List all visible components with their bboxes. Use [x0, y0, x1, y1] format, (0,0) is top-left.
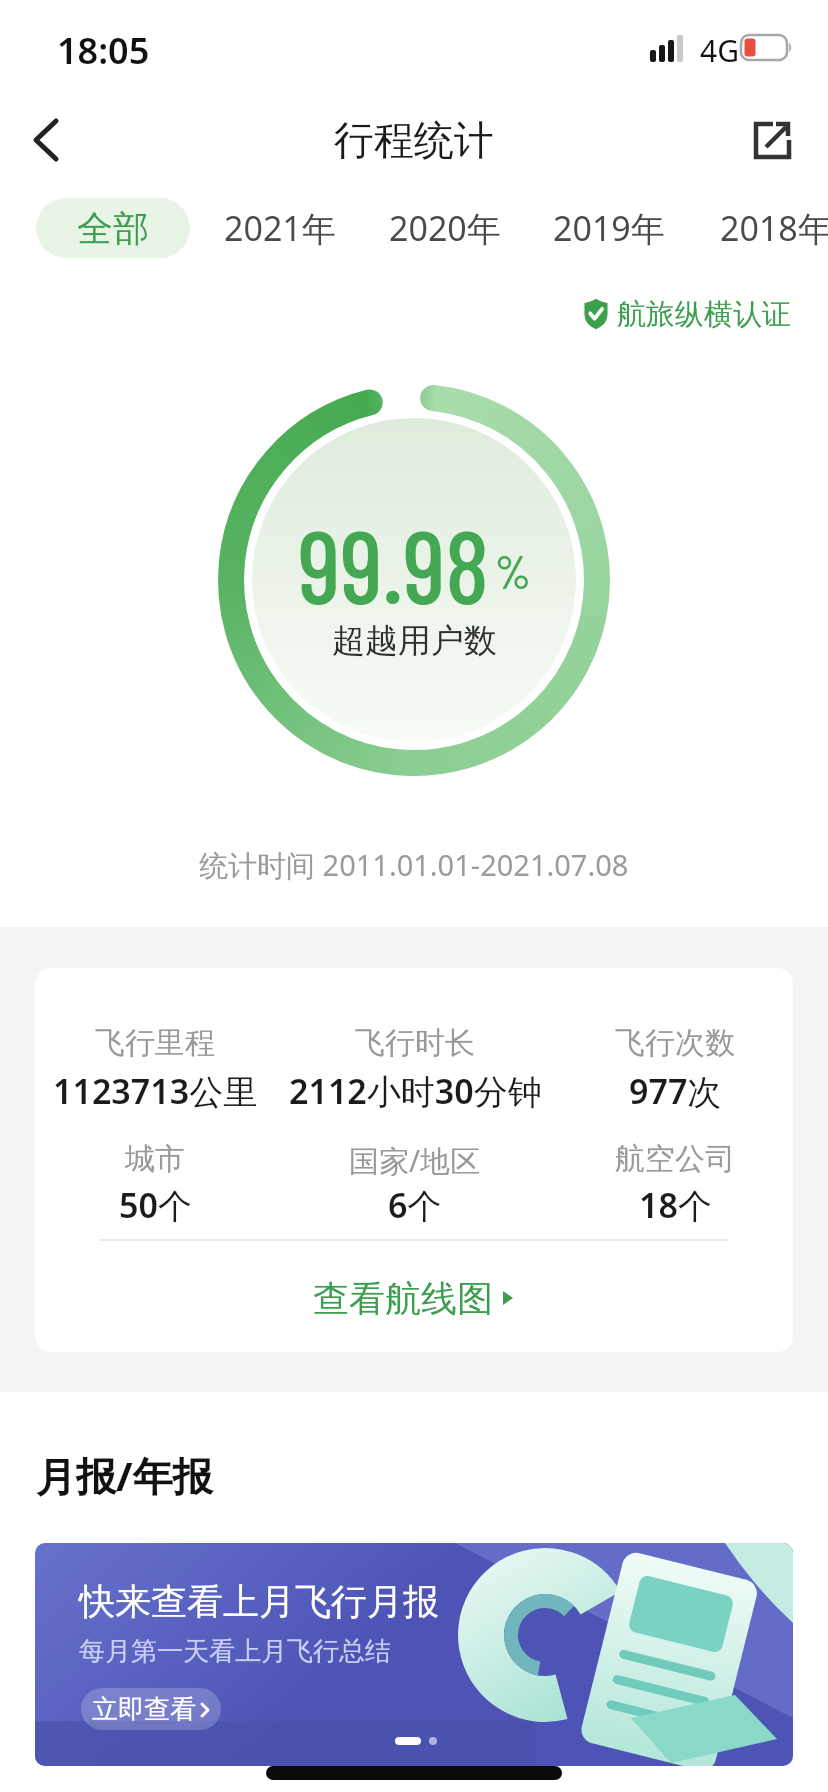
button[interactable]: 快来查看上月飞行月报	[35, 1543, 793, 1766]
staticText: 行程统计	[334, 115, 494, 165]
staticText: 城市	[125, 1140, 185, 1176]
staticText: 全部	[77, 206, 149, 251]
staticText: 6个	[388, 1182, 442, 1226]
button[interactable]: 2018年	[701, 198, 828, 258]
staticText: 99.98	[298, 502, 490, 612]
staticText: 每月第一天看上月飞行总结	[79, 1635, 391, 1668]
staticText: 977次	[629, 1068, 722, 1112]
staticText: 统计时间 2011.01.01-2021.07.08	[199, 845, 629, 885]
button[interactable]: 航旅纵横认证	[583, 294, 791, 334]
button[interactable]: 2020年	[370, 198, 520, 258]
staticText: 超越用户数	[332, 620, 497, 662]
staticText: 4G	[700, 30, 739, 71]
staticText: %	[495, 543, 531, 598]
button[interactable]	[738, 106, 806, 174]
staticText: 18个	[639, 1182, 712, 1226]
button[interactable]	[14, 108, 78, 172]
staticText: 航空公司	[615, 1140, 735, 1176]
button[interactable]: 全部	[36, 198, 190, 258]
staticText: 2112小时30分钟	[289, 1068, 542, 1112]
staticText: 国家/地区	[349, 1140, 481, 1176]
staticText: 月报/年报	[36, 1448, 213, 1503]
button[interactable]: 2021年	[205, 198, 355, 258]
staticText: 2018年	[720, 205, 828, 251]
button[interactable]: 立即查看	[81, 1688, 221, 1730]
staticText: 1123713公里	[53, 1068, 258, 1112]
staticText: 飞行里程	[95, 1024, 215, 1060]
staticText: 快来查看上月飞行月报	[79, 1579, 439, 1624]
staticText: 50个	[119, 1182, 192, 1226]
staticText: 飞行时长	[355, 1024, 475, 1060]
staticText: 2019年	[553, 205, 665, 251]
staticText: 18:05	[57, 26, 150, 75]
staticText: 2021年	[224, 205, 336, 251]
staticText: 航旅纵横认证	[617, 296, 791, 333]
staticText: 立即查看	[92, 1693, 196, 1726]
button[interactable]: 查看航线图	[35, 1268, 793, 1328]
staticText: 飞行次数	[615, 1024, 735, 1060]
staticText: 查看航线图	[313, 1276, 493, 1321]
staticText: 2020年	[389, 205, 501, 251]
button[interactable]: 2019年	[534, 198, 684, 258]
